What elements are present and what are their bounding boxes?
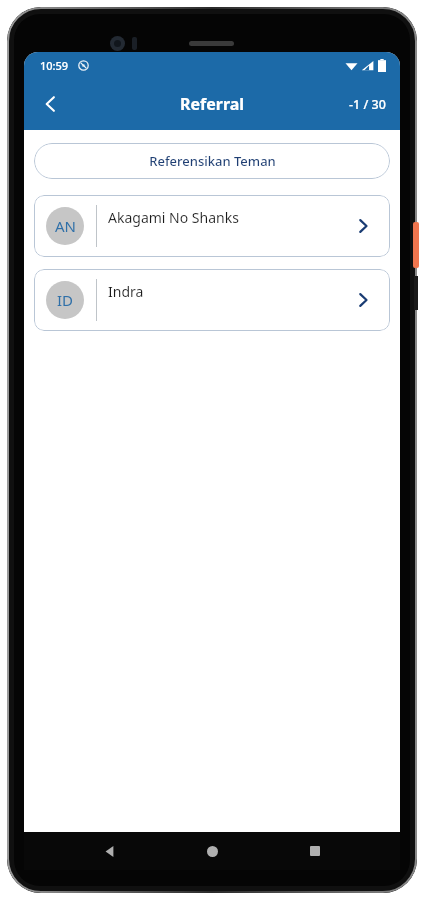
staticText: AN bbox=[55, 216, 76, 236]
staticText: -1 / 30 bbox=[349, 96, 386, 113]
staticText: Referral bbox=[180, 93, 245, 115]
staticText: Indra bbox=[108, 282, 144, 301]
staticText: ID bbox=[57, 290, 74, 310]
staticText: 10:59 bbox=[40, 58, 69, 73]
button[interactable]: -1 / 30 bbox=[349, 96, 386, 113]
button[interactable]: Home bbox=[195, 834, 229, 868]
button[interactable]: AN bbox=[34, 195, 390, 257]
button[interactable]: Open details bbox=[348, 211, 378, 241]
button[interactable]: Back bbox=[93, 834, 127, 868]
staticText: Referensikan Teman bbox=[149, 152, 276, 170]
button[interactable]: Open details bbox=[348, 285, 378, 315]
staticText: Akagami No Shanks bbox=[108, 208, 239, 227]
button[interactable]: Back bbox=[30, 83, 72, 125]
button[interactable]: Referensikan Teman bbox=[34, 143, 390, 179]
button[interactable]: Recent apps bbox=[298, 834, 332, 868]
button[interactable]: ID bbox=[34, 269, 390, 331]
